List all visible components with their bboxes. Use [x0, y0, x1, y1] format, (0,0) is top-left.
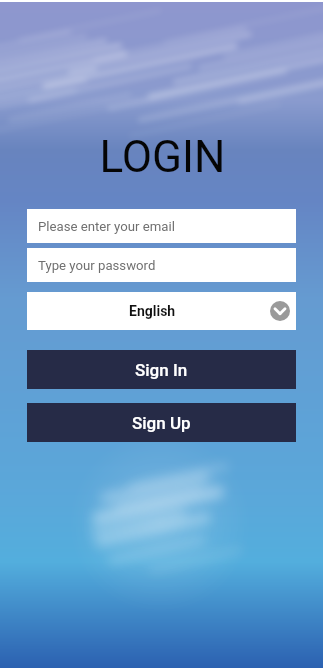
button[interactable]: Sign Up	[27, 403, 296, 442]
staticText: Please enter your email	[38, 219, 175, 234]
button[interactable]: Type your password	[27, 248, 296, 282]
button[interactable]: Sign In	[27, 350, 296, 389]
staticText: Type your password	[38, 258, 156, 273]
other: Select language	[270, 301, 290, 321]
button[interactable]: English	[27, 292, 296, 330]
staticText: Sign Up	[132, 413, 191, 433]
staticText: Sign In	[135, 360, 188, 380]
button[interactable]: Please enter your email	[27, 209, 296, 243]
staticText: LOGIN	[0, 131, 325, 183]
staticText: English	[129, 303, 176, 319]
